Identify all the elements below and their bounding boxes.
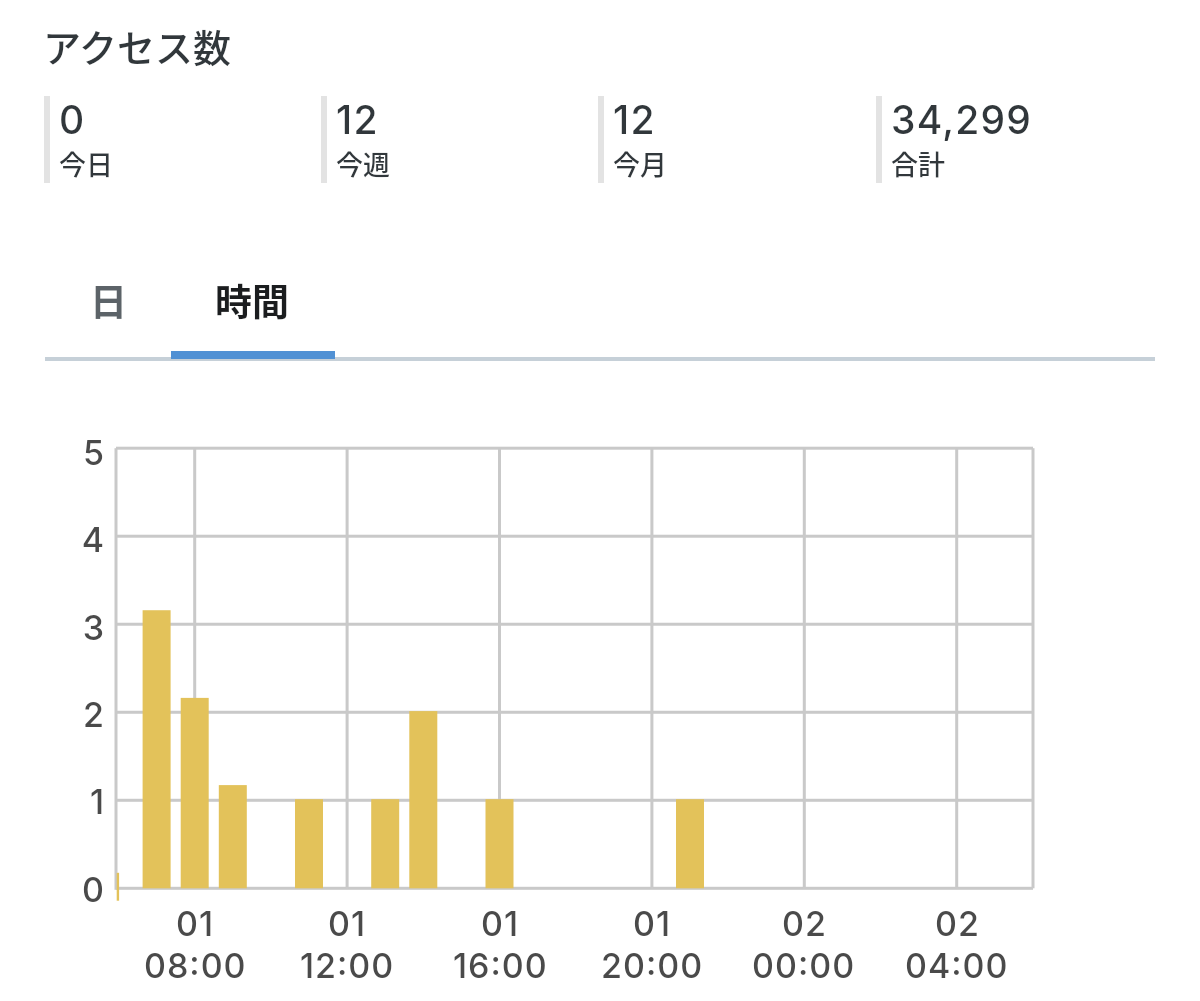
- staticText: 今日: [59, 144, 113, 183]
- staticText: 04:00: [905, 945, 1009, 986]
- staticText: 20:00: [601, 945, 704, 986]
- staticText: 08:00: [144, 945, 247, 986]
- staticText: 01: [481, 903, 520, 944]
- staticText: アクセス数: [43, 18, 232, 73]
- staticText: 2: [83, 694, 105, 735]
- staticText: 12: [336, 96, 379, 143]
- staticText: 今週: [336, 144, 390, 183]
- staticText: 日: [90, 273, 127, 327]
- staticText: 02: [935, 903, 980, 944]
- staticText: 02: [782, 903, 827, 944]
- staticText: 5: [82, 432, 105, 473]
- staticText: 1: [89, 781, 105, 822]
- staticText: 12:00: [300, 945, 395, 986]
- staticText: 0: [82, 869, 105, 910]
- staticText: 00:00: [752, 945, 856, 986]
- staticText: 今月: [613, 144, 667, 183]
- button[interactable]: 日: [46, 269, 171, 331]
- staticText: 12: [613, 96, 656, 143]
- staticText: 16:00: [453, 945, 548, 986]
- staticText: 4: [81, 519, 105, 560]
- staticText: 合計: [891, 144, 945, 183]
- staticText: 01: [176, 903, 215, 944]
- staticText: 3: [82, 607, 105, 648]
- staticText: 時間: [215, 273, 289, 327]
- staticText: 34,299: [891, 96, 1032, 143]
- staticText: 01: [633, 903, 672, 944]
- staticText: 0: [59, 96, 86, 143]
- button[interactable]: 時間: [171, 269, 333, 331]
- staticText: 01: [328, 903, 367, 944]
